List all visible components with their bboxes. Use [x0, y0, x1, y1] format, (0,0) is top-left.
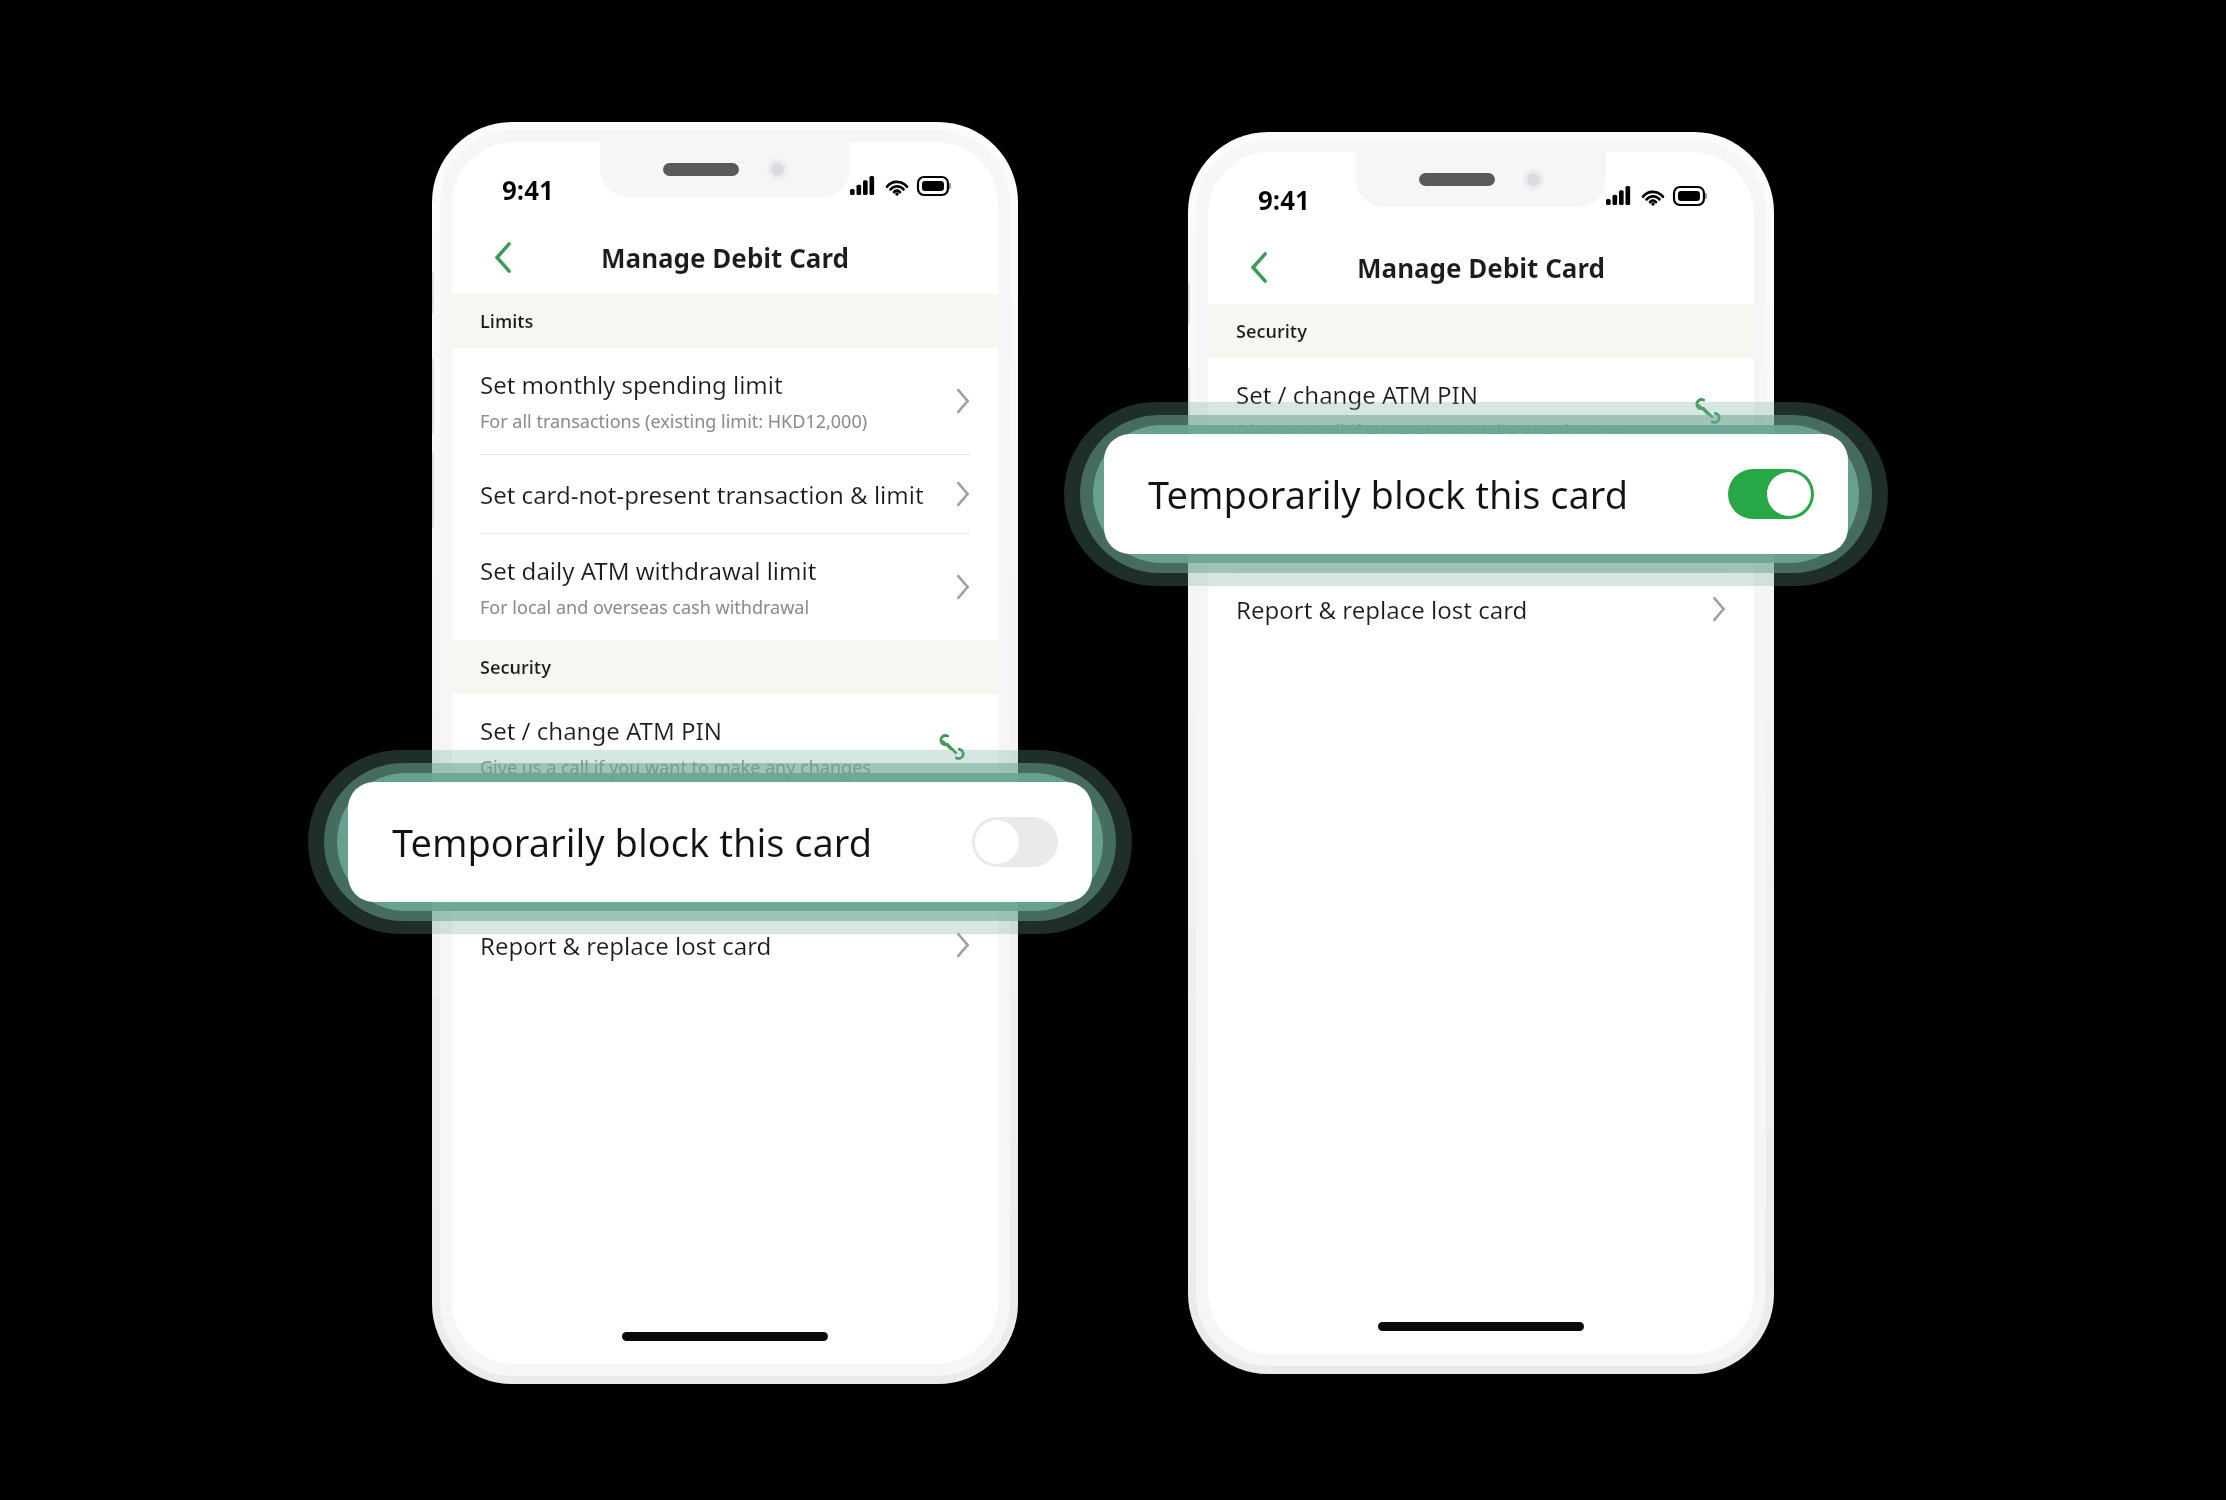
- staticText: Report & replace lost card: [1236, 593, 1528, 626]
- button[interactable]: Back: [1234, 242, 1284, 292]
- staticText: Give us a call if you want to make any c…: [1236, 419, 1627, 444]
- staticText: Temporarily block this card: [392, 816, 958, 868]
- button[interactable]: Set monthly spending limit: [452, 348, 998, 454]
- staticText: Report & replace lost card: [480, 929, 772, 962]
- staticText: For all transactions (existing limit: HK…: [480, 409, 868, 434]
- staticText: 9:41: [1258, 182, 1310, 217]
- staticText: Limits: [480, 309, 534, 334]
- staticText: Security: [480, 655, 552, 680]
- staticText: 9:41: [502, 172, 554, 207]
- staticText: For local and overseas cash withdrawal: [480, 595, 810, 620]
- staticText: Security: [1236, 319, 1308, 344]
- staticText: Set daily ATM withdrawal limit: [480, 554, 817, 587]
- button[interactable]: Block card, off: [972, 817, 1058, 867]
- button[interactable]: Set card-not-present transaction & limit: [452, 455, 998, 533]
- button[interactable]: Temporarily block this card: [348, 782, 1092, 902]
- button[interactable]: Back: [478, 232, 528, 282]
- staticText: Manage Debit Card: [1208, 250, 1754, 285]
- staticText: Set / change ATM PIN: [480, 714, 722, 747]
- staticText: Give us a call if you want to make any c…: [480, 755, 871, 780]
- button[interactable]: Temporarily block this card: [1208, 465, 1754, 569]
- button[interactable]: Temporarily block this card: [1104, 434, 1848, 554]
- button[interactable]: Temporarily block this card: [452, 801, 998, 905]
- staticText: Set / change ATM PIN: [1236, 378, 1478, 411]
- button[interactable]: Set daily ATM withdrawal limit: [452, 534, 998, 640]
- staticText: Set monthly spending limit: [480, 368, 783, 401]
- staticText: Set card-not-present transaction & limit: [480, 478, 924, 511]
- staticText: Temporarily block this card: [1148, 468, 1714, 520]
- button[interactable]: Report & replace lost card: [1208, 570, 1754, 648]
- button[interactable]: Set / change ATM PIN: [1208, 358, 1754, 464]
- button[interactable]: Report & replace lost card: [452, 906, 998, 984]
- button[interactable]: Call us: [1690, 393, 1726, 429]
- button[interactable]: Call us: [934, 729, 970, 765]
- staticText: Manage Debit Card: [452, 240, 998, 275]
- button[interactable]: Block card, on: [1728, 469, 1814, 519]
- button[interactable]: Set / change ATM PIN: [452, 694, 998, 800]
